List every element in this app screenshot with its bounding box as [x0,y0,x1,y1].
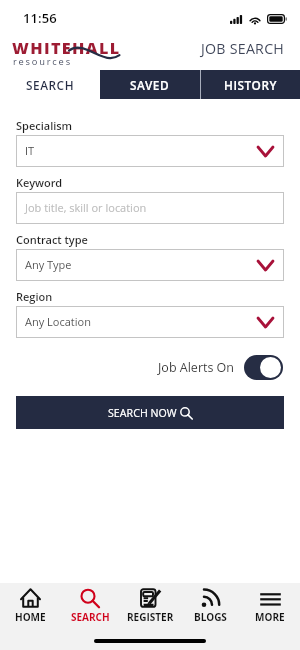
staticText: Contract type [16,232,88,247]
staticText: Any Type [25,257,72,272]
staticText: IT [25,143,35,158]
button[interactable]: Search [60,587,120,624]
staticText: Keyword [16,175,63,190]
staticText: Specialism [16,118,73,133]
staticText: Region [16,289,53,304]
staticText: SEARCH [71,610,110,624]
button[interactable]: Blogs [180,587,240,624]
button[interactable]: SAVED [100,70,200,99]
staticText: resources [13,55,72,68]
staticText: REGISTER [127,610,174,624]
button[interactable]: Any Location [16,306,284,338]
staticText: Job title, skill or location [25,200,147,215]
button[interactable]: HISTORY [201,70,300,99]
staticText: SEARCH [26,77,75,93]
staticText: MORE [255,610,285,624]
staticText: HOME [15,610,46,624]
button[interactable]: SEARCH NOW [16,396,284,429]
button[interactable]: More [240,587,300,624]
button[interactable]: Any Type [16,249,284,281]
staticText: SAVED [130,77,170,93]
staticText: Any Location [25,314,91,329]
staticText: JOB SEARCH [201,39,285,58]
button[interactable]: Job alerts toggle [244,355,283,380]
button[interactable]: IT [16,135,284,167]
staticText: Job Alerts On [158,359,235,376]
staticText: SEARCH NOW [108,406,177,420]
button[interactable]: Job title, skill or location [16,192,284,224]
button[interactable]: Register [120,587,180,624]
button[interactable]: SEARCH [0,70,100,99]
staticText: BLOGS [194,610,227,624]
staticText: 11:56 [23,9,57,27]
button[interactable]: Home [0,587,60,624]
staticText: HISTORY [224,77,278,93]
staticText: WHITEHALL [12,37,121,59]
